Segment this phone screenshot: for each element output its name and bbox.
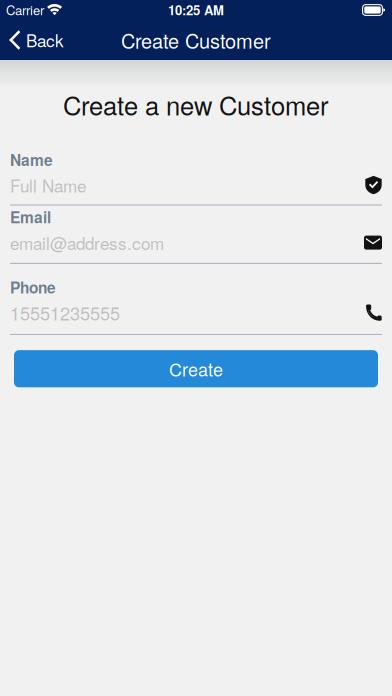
button[interactable]: Back <box>0 20 76 60</box>
staticText: Back <box>26 28 64 52</box>
staticText: Phone <box>10 276 56 298</box>
button[interactable]: Email <box>10 206 382 264</box>
staticText: Create Customer <box>121 26 271 54</box>
staticText: Create a new Customer <box>63 86 329 123</box>
staticText: email@address.com <box>10 230 164 255</box>
staticText: Name <box>10 149 53 171</box>
staticText: Create <box>169 356 223 382</box>
button[interactable]: Phone <box>10 276 382 335</box>
staticText: Full Name <box>10 173 86 197</box>
button[interactable]: Name <box>10 149 382 206</box>
staticText: Email <box>10 206 51 228</box>
staticText: 15551235555 <box>10 300 120 326</box>
button[interactable]: Create <box>14 350 378 387</box>
staticText: Carrier <box>6 0 44 19</box>
staticText: 10:25 AM <box>168 1 224 19</box>
